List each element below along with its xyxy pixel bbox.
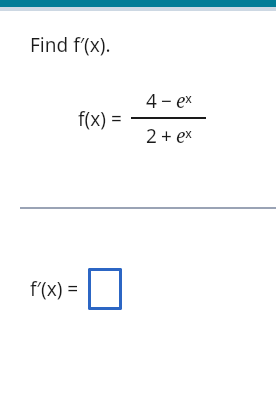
staticText: f(x) = [78,106,122,132]
staticText: ex [176,123,192,149]
staticText: ex [176,88,192,114]
button[interactable]: Answer input field [88,268,122,310]
staticText: f′(x) = [30,276,79,302]
staticText: 2 [146,123,157,149]
staticText: 4 [146,88,157,114]
staticText: Find f′(x). [30,32,111,58]
staticText: − [161,88,172,114]
staticText: + [161,123,172,149]
